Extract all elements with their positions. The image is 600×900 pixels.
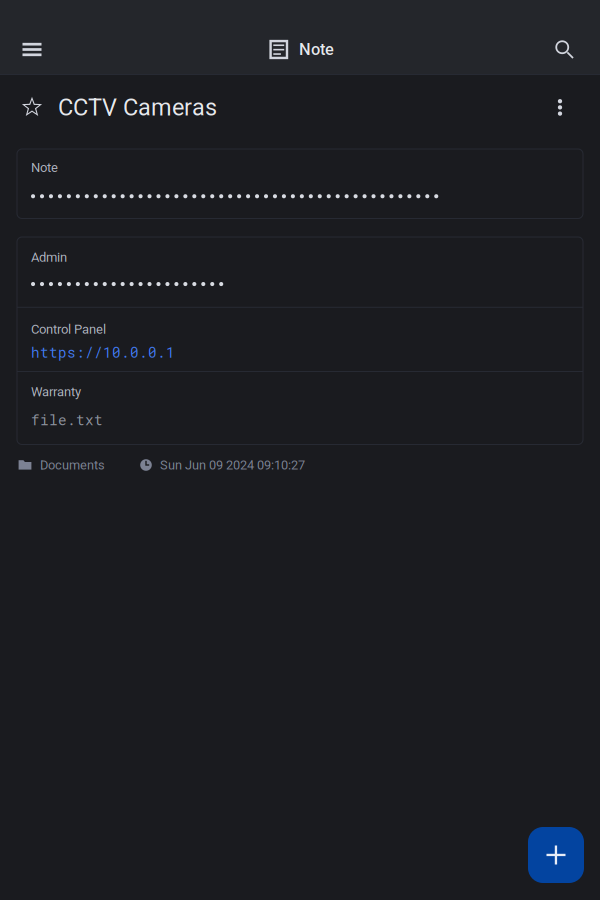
button[interactable]: New note <box>528 827 584 883</box>
staticText: Admin <box>31 250 67 265</box>
button[interactable]: Menu <box>12 29 52 69</box>
staticText: file.txt <box>31 410 103 429</box>
staticText: https://10.0.0.1 <box>31 343 175 362</box>
button[interactable]: Search <box>544 29 584 69</box>
staticText: Note <box>31 160 58 175</box>
button[interactable]: Favourite <box>17 92 47 122</box>
staticText: Sun Jun 09 2024 09:10:27 <box>160 457 305 472</box>
staticText: Control Panel <box>31 322 106 337</box>
staticText: Note <box>299 40 334 59</box>
staticText: CCTV Cameras <box>58 94 217 121</box>
button[interactable]: More options <box>545 92 575 122</box>
staticText: Warranty <box>31 384 81 399</box>
staticText: Documents <box>40 457 105 472</box>
